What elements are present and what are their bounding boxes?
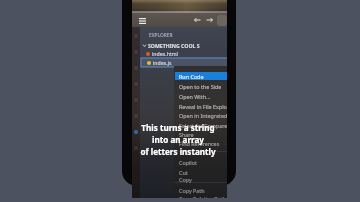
button[interactable]: Open in Integrated Te [179, 112, 227, 119]
button[interactable]: Find References [179, 140, 220, 147]
button[interactable]: Search [217, 15, 227, 26]
staticText: This turns a string [141, 122, 215, 133]
button[interactable]: index.html [140, 49, 227, 58]
button[interactable]: Menu [137, 15, 148, 26]
staticText: EXPLORER [149, 32, 173, 39]
button[interactable]: index.js [141, 58, 227, 67]
button[interactable]: Copy Relative Path [179, 195, 226, 198]
staticText: index.js [153, 59, 172, 66]
button[interactable]: Forward [204, 15, 214, 25]
button[interactable]: Copy Path [179, 187, 205, 194]
button[interactable]: Open to the Side [179, 83, 222, 90]
button[interactable]: Back [192, 15, 202, 25]
staticText: of letters instantly [140, 146, 216, 157]
staticText: SOMETHING COOL S [148, 42, 200, 49]
button[interactable]: Reveal in File Explorer [179, 103, 227, 110]
button[interactable]: SOMETHING COOL S [140, 41, 227, 49]
button[interactable]: Copilot [179, 159, 197, 166]
staticText: index.html [152, 50, 178, 57]
button[interactable]: Cut [179, 169, 188, 176]
button[interactable]: Select for Compare [179, 122, 227, 129]
button[interactable]: Copy [179, 176, 192, 183]
button[interactable]: Open With... [179, 93, 211, 100]
staticText: into an array [152, 134, 204, 145]
button[interactable]: Run Code [179, 73, 204, 80]
button[interactable]: Share [179, 131, 194, 138]
